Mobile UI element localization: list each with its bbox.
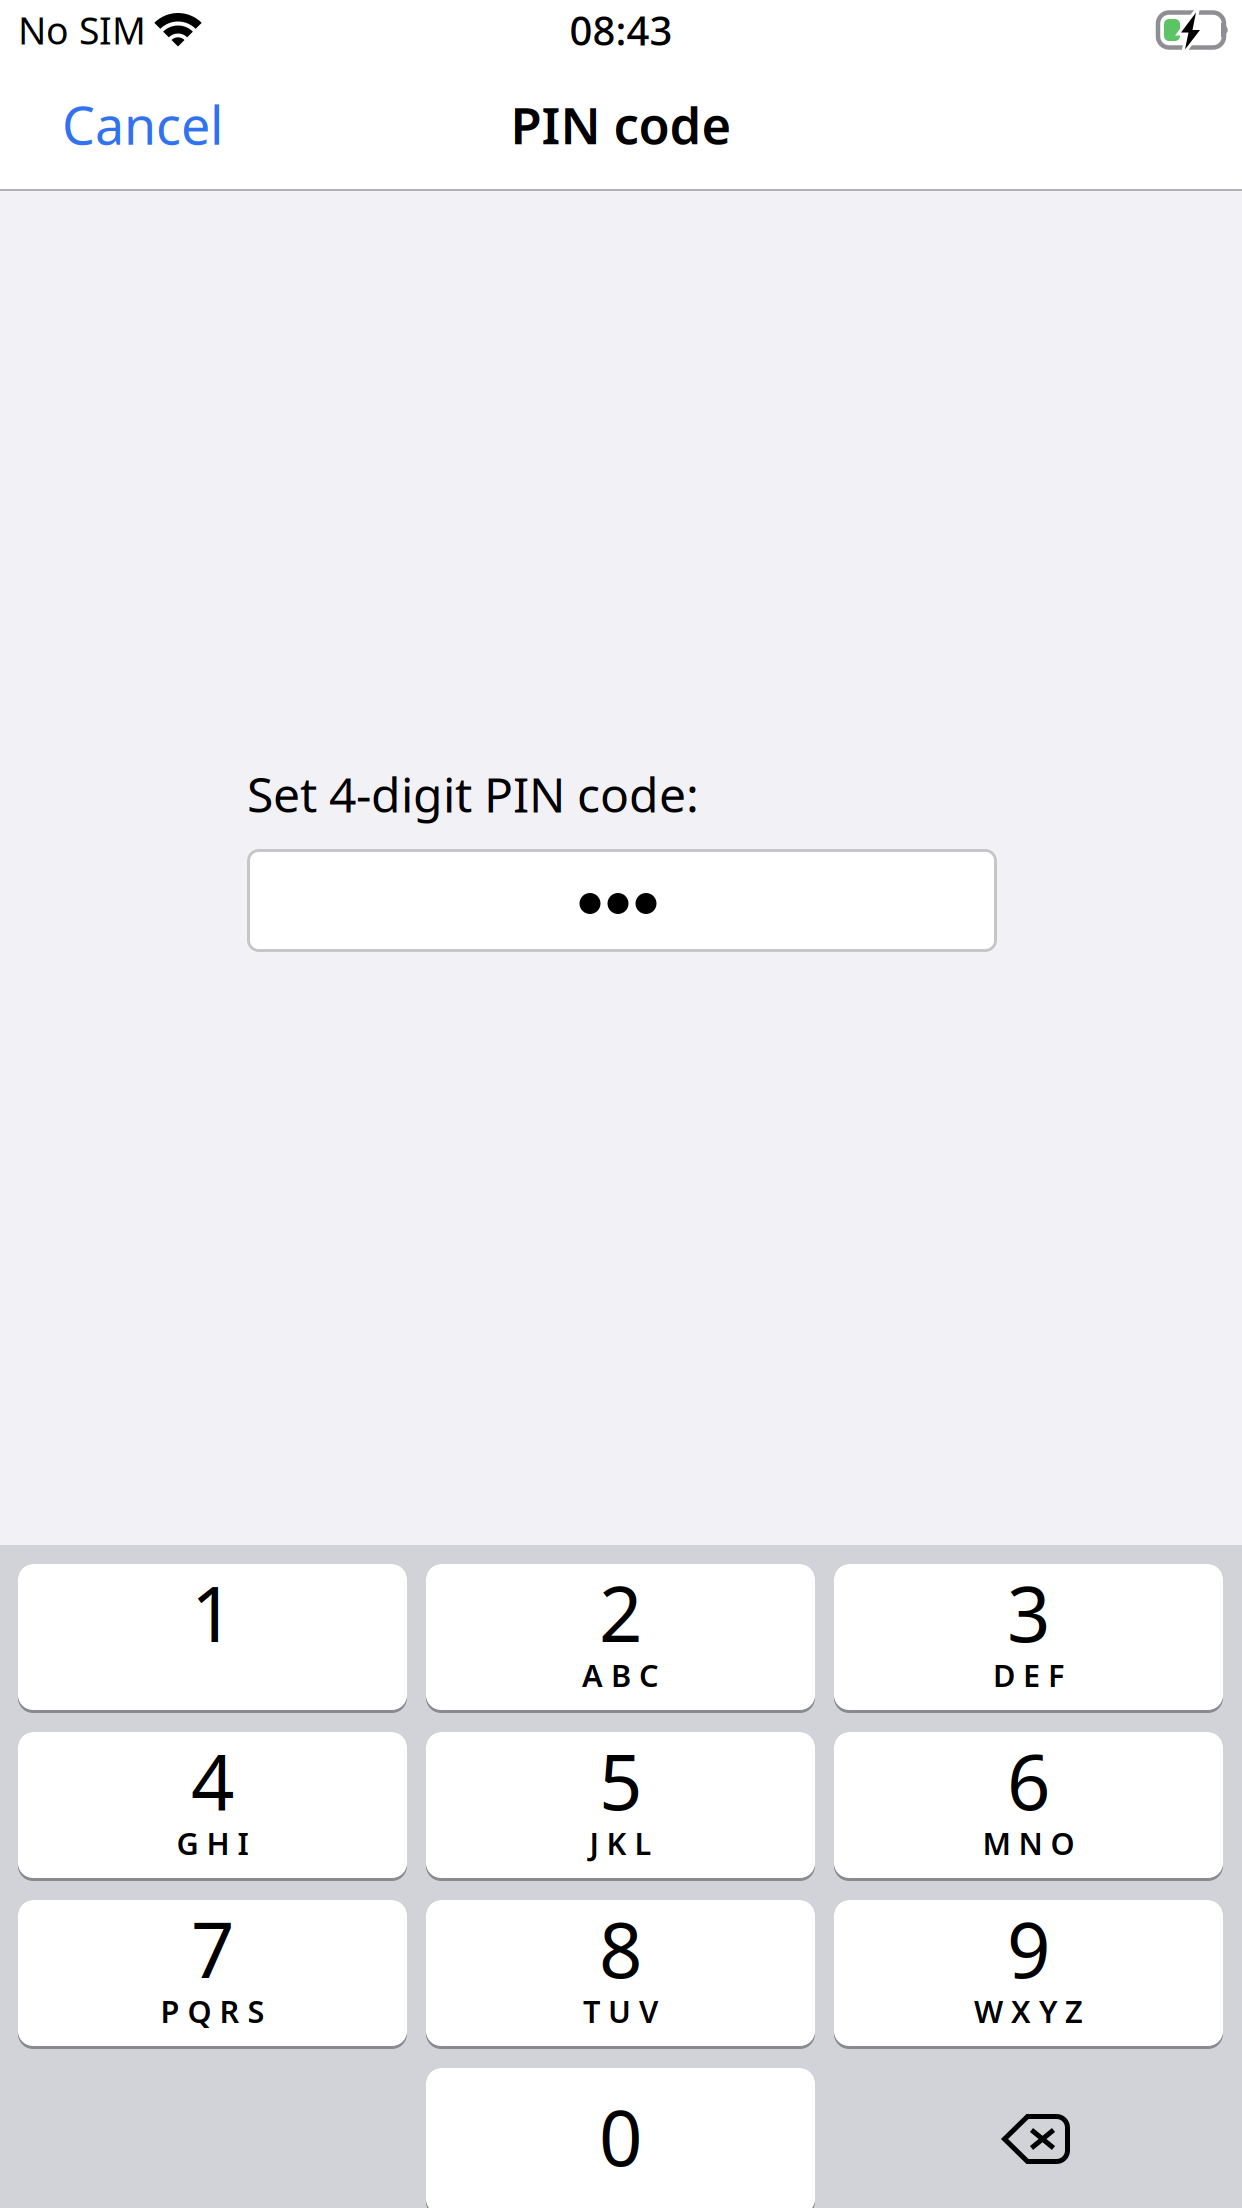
- staticText: M N O: [982, 1823, 1074, 1863]
- staticText: P Q R S: [160, 1991, 264, 2031]
- staticText: Cancel: [62, 90, 223, 159]
- staticText: T U V: [583, 1991, 658, 2031]
- button[interactable]: Delete: [834, 2068, 1223, 2208]
- staticText: D E F: [993, 1655, 1064, 1695]
- staticText: J K L: [589, 1823, 651, 1863]
- staticText: 08:43: [569, 3, 672, 56]
- button[interactable]: Cancel: [46, 82, 239, 167]
- button[interactable]: 9: [834, 1900, 1223, 2049]
- button[interactable]: 8: [426, 1900, 815, 2049]
- button[interactable]: 7: [18, 1900, 407, 2049]
- button[interactable]: 2: [426, 1564, 815, 1713]
- button[interactable]: 3: [834, 1564, 1223, 1713]
- staticText: A B C: [582, 1655, 659, 1695]
- button[interactable]: 6: [834, 1732, 1223, 1881]
- button[interactable]: PIN code entry field: [247, 849, 997, 952]
- staticText: 8: [599, 1898, 642, 1999]
- staticText: Set 4-digit PIN code:: [247, 762, 699, 826]
- staticText: 5: [599, 1730, 642, 1831]
- staticText: PIN code: [510, 91, 731, 158]
- staticText: No SIM: [18, 5, 146, 55]
- staticText: 2: [599, 1562, 642, 1663]
- staticText: 3: [1007, 1562, 1050, 1663]
- staticText: 1: [191, 1562, 234, 1663]
- button[interactable]: 0: [426, 2068, 815, 2208]
- button[interactable]: 1: [18, 1564, 407, 1713]
- staticText: W X Y Z: [974, 1991, 1083, 2031]
- button[interactable]: 5: [426, 1732, 815, 1881]
- button[interactable]: 4: [18, 1732, 407, 1881]
- staticText: 0: [599, 2086, 642, 2187]
- staticText: G H I: [176, 1823, 248, 1863]
- staticText: 4: [191, 1730, 234, 1831]
- staticText: 7: [191, 1898, 234, 1999]
- staticText: 6: [1007, 1730, 1050, 1831]
- staticText: 9: [1007, 1898, 1050, 1999]
